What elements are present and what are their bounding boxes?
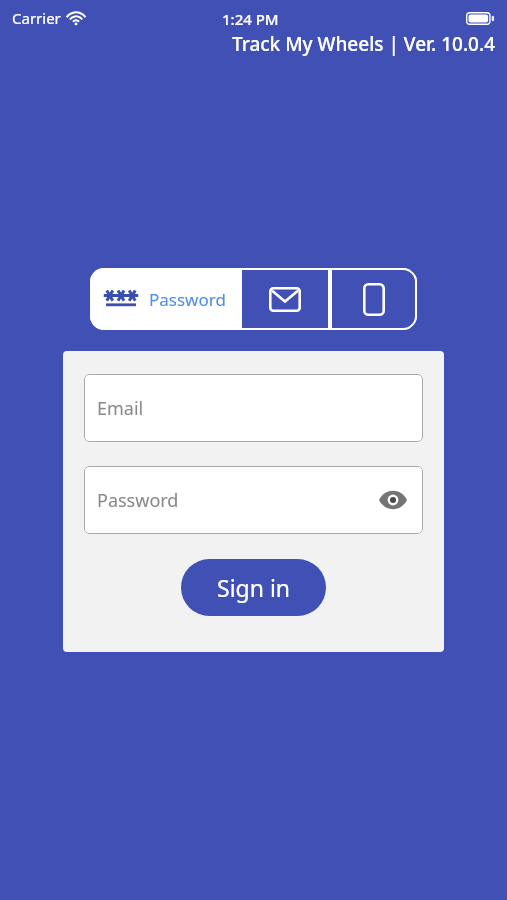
staticText: Track My Wheels | Ver. 10.0.4	[232, 31, 495, 57]
button[interactable]: Sign in with email	[240, 268, 330, 330]
staticText: Password	[97, 488, 179, 513]
staticText: Carrier	[12, 8, 61, 28]
staticText: Sign in	[217, 572, 291, 603]
staticText: Password	[149, 288, 226, 311]
staticText: 1:24 PM	[222, 9, 279, 29]
staticText: Email	[97, 396, 144, 421]
button[interactable]: Email	[84, 374, 423, 442]
button[interactable]: Show password	[376, 483, 410, 517]
button[interactable]: Password	[84, 466, 423, 534]
button[interactable]: Sign in with phone	[330, 268, 417, 330]
button[interactable]: Password	[90, 268, 240, 330]
button[interactable]: Sign in	[181, 559, 326, 616]
